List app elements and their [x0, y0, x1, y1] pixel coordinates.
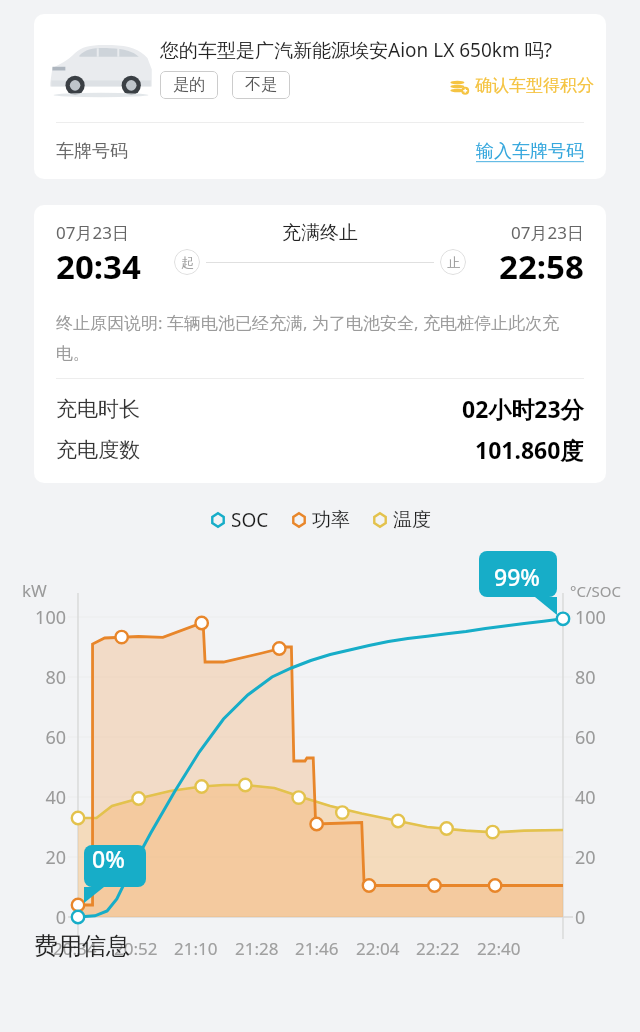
staticText: 功率 — [312, 508, 350, 532]
staticText: 22:40 — [477, 937, 521, 960]
staticText: 20 — [0, 845, 66, 870]
staticText: 温度 — [393, 508, 431, 532]
staticText: 止 — [447, 254, 460, 270]
staticText: 0% — [92, 843, 125, 874]
staticText: 99% — [494, 561, 540, 592]
staticText: 确认车型得积分 — [475, 75, 594, 96]
staticText: 您的车型是广汽新能源埃安Aion LX 650km 吗? — [160, 37, 552, 63]
staticText: 21:10 — [174, 937, 218, 960]
staticText: 07月23日 — [511, 221, 584, 244]
staticText: 80 — [575, 665, 596, 690]
staticText: 22:04 — [356, 937, 400, 960]
staticText: 充电度数 — [56, 437, 140, 463]
staticText: 100 — [0, 605, 66, 630]
staticText: 充满终止 — [282, 221, 358, 245]
staticText: 60 — [575, 725, 596, 750]
button[interactable]: 是的 — [160, 71, 218, 99]
button[interactable]: 车牌号码 — [34, 123, 606, 179]
staticText: 21:46 — [295, 937, 339, 960]
staticText: 20:34 — [53, 937, 97, 960]
staticText: 费用信息 — [34, 931, 130, 961]
staticText: 起 — [181, 254, 194, 270]
staticText: 21:28 — [235, 937, 279, 960]
staticText: 终止原因说明: 车辆电池已经充满, 为了电池安全, 充电桩停止此次充电。 — [56, 311, 584, 364]
staticText: SOC — [231, 507, 269, 533]
staticText: kW — [22, 579, 47, 602]
staticText: 22:22 — [416, 937, 460, 960]
staticText: 0 — [0, 905, 66, 930]
staticText: 02小时23分 — [462, 393, 584, 424]
staticText: 100 — [575, 605, 606, 630]
staticText: 不是 — [245, 75, 277, 95]
button[interactable]: 不是 — [232, 71, 290, 99]
staticText: 60 — [0, 725, 66, 750]
button[interactable]: 确认车型得积分 — [450, 73, 594, 98]
staticText: 0 — [575, 905, 586, 930]
staticText: 07月23日 — [56, 221, 129, 244]
staticText: 40 — [575, 785, 596, 810]
staticText: 20:34 — [56, 244, 141, 289]
staticText: 101.860度 — [475, 434, 584, 465]
staticText: 80 — [0, 665, 66, 690]
staticText: 输入车牌号码 — [476, 140, 584, 163]
staticText: 20 — [575, 845, 596, 870]
staticText: 是的 — [173, 75, 205, 95]
staticText: 22:58 — [499, 244, 584, 289]
staticText: 车牌号码 — [56, 140, 128, 163]
staticText: °C/SOC — [570, 581, 621, 601]
staticText: 20:52 — [114, 937, 158, 960]
staticText: 40 — [0, 785, 66, 810]
staticText: 充电时长 — [56, 396, 140, 422]
